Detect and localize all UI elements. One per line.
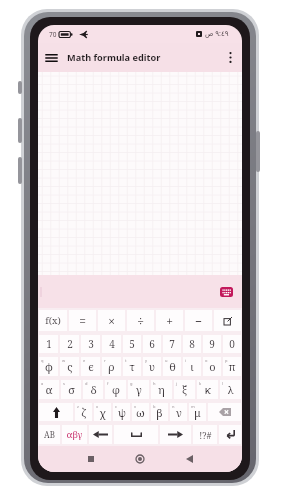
staticText: τ [129, 359, 135, 374]
staticText: ρ [108, 359, 115, 374]
button[interactable]: κ [197, 380, 218, 399]
staticText: o [205, 358, 208, 363]
button[interactable]: Backspace [208, 403, 241, 421]
staticText: e [83, 358, 86, 363]
staticText: h [153, 381, 156, 386]
button[interactable]: χ [94, 403, 111, 421]
staticText: k [199, 381, 202, 386]
button[interactable]: Move right [160, 425, 191, 444]
staticText: μ [194, 405, 201, 420]
staticText: Math formula editor [67, 51, 161, 64]
staticText: κ [205, 382, 211, 397]
button[interactable]: ζ [75, 403, 92, 421]
button[interactable]: σ [61, 380, 81, 399]
button[interactable]: 1 [39, 335, 58, 353]
button[interactable]: αβγ [62, 425, 87, 444]
button[interactable]: Keyboard [220, 287, 233, 297]
button[interactable]: Move left [89, 425, 112, 444]
button[interactable]: Recents [78, 446, 104, 472]
button[interactable]: 3 [81, 335, 100, 353]
staticText: ψ [118, 405, 126, 420]
button[interactable]: ϕ [39, 357, 58, 376]
button[interactable]: Shift [39, 403, 73, 421]
button[interactable]: ρ [102, 357, 121, 376]
button[interactable]: 9 [203, 335, 221, 353]
button[interactable]: ω [132, 403, 149, 421]
button[interactable]: Back [176, 446, 202, 472]
button[interactable]: − [185, 310, 212, 331]
staticText: 70 [49, 30, 57, 39]
button[interactable]: γ [128, 380, 149, 399]
button[interactable]: × [98, 310, 125, 331]
staticText: AB [44, 429, 55, 440]
staticText: θ [169, 359, 176, 374]
button[interactable]: Home [127, 446, 153, 472]
staticText: t [125, 358, 127, 363]
button[interactable]: ψ [113, 403, 130, 421]
staticText: d [85, 381, 88, 386]
staticText: r [104, 358, 106, 363]
staticText: a [41, 381, 44, 386]
button[interactable]: φ [105, 380, 126, 399]
button[interactable]: More options [218, 43, 242, 72]
button[interactable]: 4 [102, 335, 121, 353]
staticText: 5 [129, 337, 135, 351]
staticText: l [222, 381, 224, 386]
button[interactable]: Open in new window [214, 310, 241, 331]
button[interactable]: λ [220, 380, 241, 399]
button[interactable]: ξ [174, 380, 195, 399]
button[interactable]: Menu [38, 43, 65, 72]
button[interactable]: 8 [183, 335, 201, 353]
staticText: ϵ [88, 359, 94, 374]
button[interactable]: AB [39, 425, 60, 444]
button[interactable]: ÷ [127, 310, 154, 331]
button[interactable]: δ [83, 380, 103, 399]
button[interactable]: υ [143, 357, 161, 376]
button[interactable]: 7 [163, 335, 181, 353]
staticText: − [195, 313, 202, 329]
button[interactable]: ς [60, 357, 79, 376]
staticText: π [228, 359, 236, 374]
button[interactable]: β [151, 403, 168, 421]
staticText: α [45, 382, 53, 397]
button[interactable]: ϵ [81, 357, 100, 376]
button[interactable]: ν [170, 403, 187, 421]
staticText: g [130, 381, 133, 386]
staticText: b [153, 404, 156, 409]
staticText: ς [67, 359, 73, 374]
button[interactable]: π [223, 357, 241, 376]
staticText: !?# [199, 429, 212, 441]
button[interactable]: Space [114, 425, 158, 444]
button[interactable]: 6 [143, 335, 161, 353]
staticText: 7 [169, 337, 175, 351]
button[interactable]: !?# [193, 425, 217, 444]
button[interactable]: θ [163, 357, 181, 376]
button[interactable]: f(x) [39, 310, 67, 331]
button[interactable]: ο [203, 357, 221, 376]
button[interactable]: 0 [223, 335, 241, 353]
button[interactable]: ι [183, 357, 201, 376]
staticText: y [145, 358, 148, 363]
button[interactable]: 5 [123, 335, 141, 353]
staticText: ζ [81, 405, 86, 420]
staticText: 9 [209, 337, 215, 351]
staticText: 4 [109, 337, 115, 351]
staticText: w [62, 358, 66, 363]
staticText: ο [209, 359, 216, 374]
button[interactable]: η [151, 380, 172, 399]
staticText: 8 [189, 337, 195, 351]
button[interactable]: τ [123, 357, 141, 376]
button[interactable]: = [69, 310, 96, 331]
staticText: ι [190, 359, 194, 374]
button[interactable]: Enter [219, 425, 241, 444]
button[interactable]: μ [189, 403, 206, 421]
staticText: υ [149, 359, 155, 374]
staticText: i [185, 358, 187, 363]
button[interactable]: α [39, 380, 59, 399]
staticText: m [191, 404, 195, 409]
button[interactable]: 2 [60, 335, 79, 353]
staticText: γ [136, 382, 142, 397]
button[interactable]: + [156, 310, 183, 331]
staticText: χ [99, 405, 106, 420]
staticText: z [77, 404, 79, 409]
